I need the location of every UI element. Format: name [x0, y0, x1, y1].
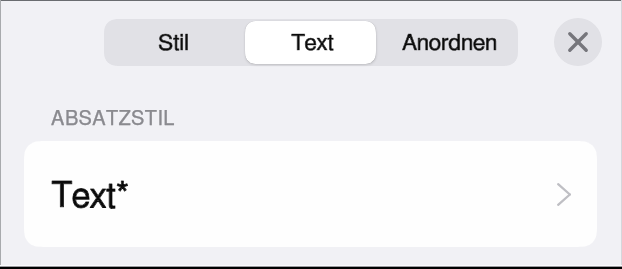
button[interactable]: Text: [243, 19, 381, 66]
staticText: Text: [291, 32, 334, 55]
staticText: Anordnen: [402, 32, 498, 55]
staticText: ABSATZSTIL: [51, 109, 176, 129]
button[interactable]: Text*: [24, 141, 597, 247]
staticText: Text*: [51, 179, 130, 214]
button[interactable]: Anordnen: [381, 19, 519, 66]
button[interactable]: Schließen: [554, 18, 602, 66]
staticText: Text*: [51, 179, 130, 214]
button[interactable]: Stil: [105, 19, 243, 66]
staticText: Stil: [158, 32, 190, 55]
staticText: Stil: [158, 32, 190, 55]
staticText: Text: [291, 32, 334, 55]
staticText: Anordnen: [402, 32, 498, 55]
staticText: ABSATZSTIL: [51, 109, 176, 129]
